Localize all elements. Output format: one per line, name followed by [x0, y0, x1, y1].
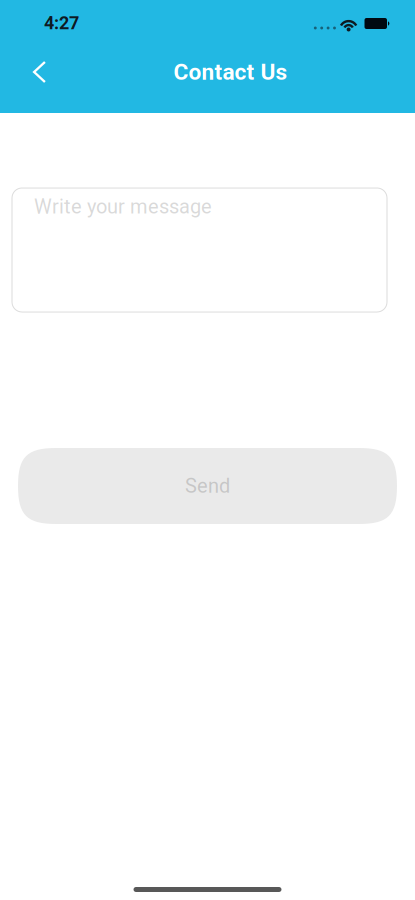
button[interactable]: Send [18, 448, 397, 524]
staticText: Contact Us [173, 59, 287, 85]
staticText: Write your message [34, 195, 212, 218]
staticText: Send [185, 474, 230, 498]
button[interactable]: Back [17, 50, 62, 94]
staticText: 4:27 [44, 12, 79, 34]
